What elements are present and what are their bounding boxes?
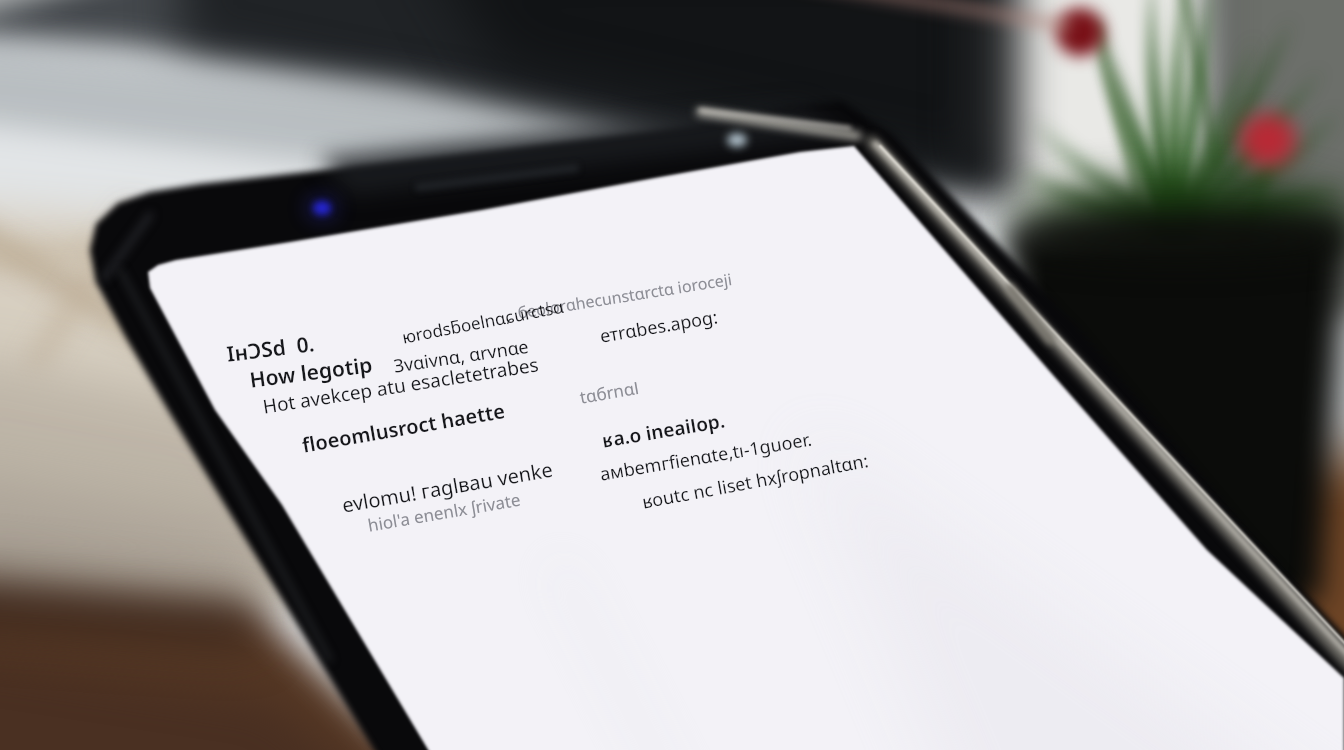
button[interactable]: Tablet displaying a document on a desk (0, 0, 1344, 750)
